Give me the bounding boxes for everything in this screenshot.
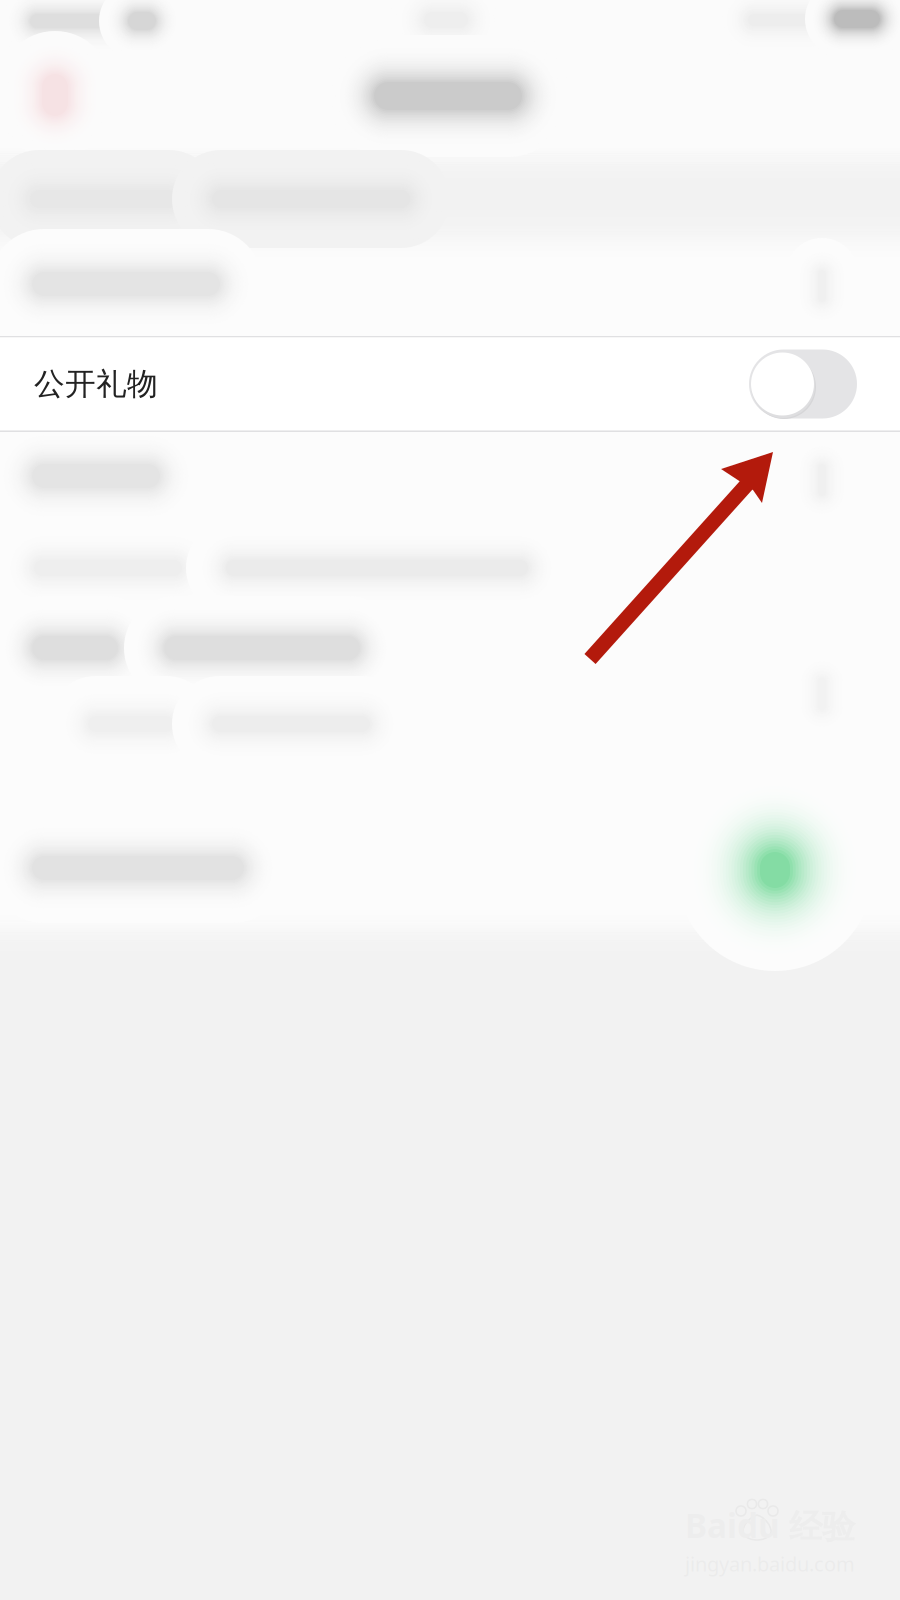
button[interactable]: 公开礼物 bbox=[0, 336, 900, 432]
staticText: 公开礼物 bbox=[34, 365, 158, 403]
